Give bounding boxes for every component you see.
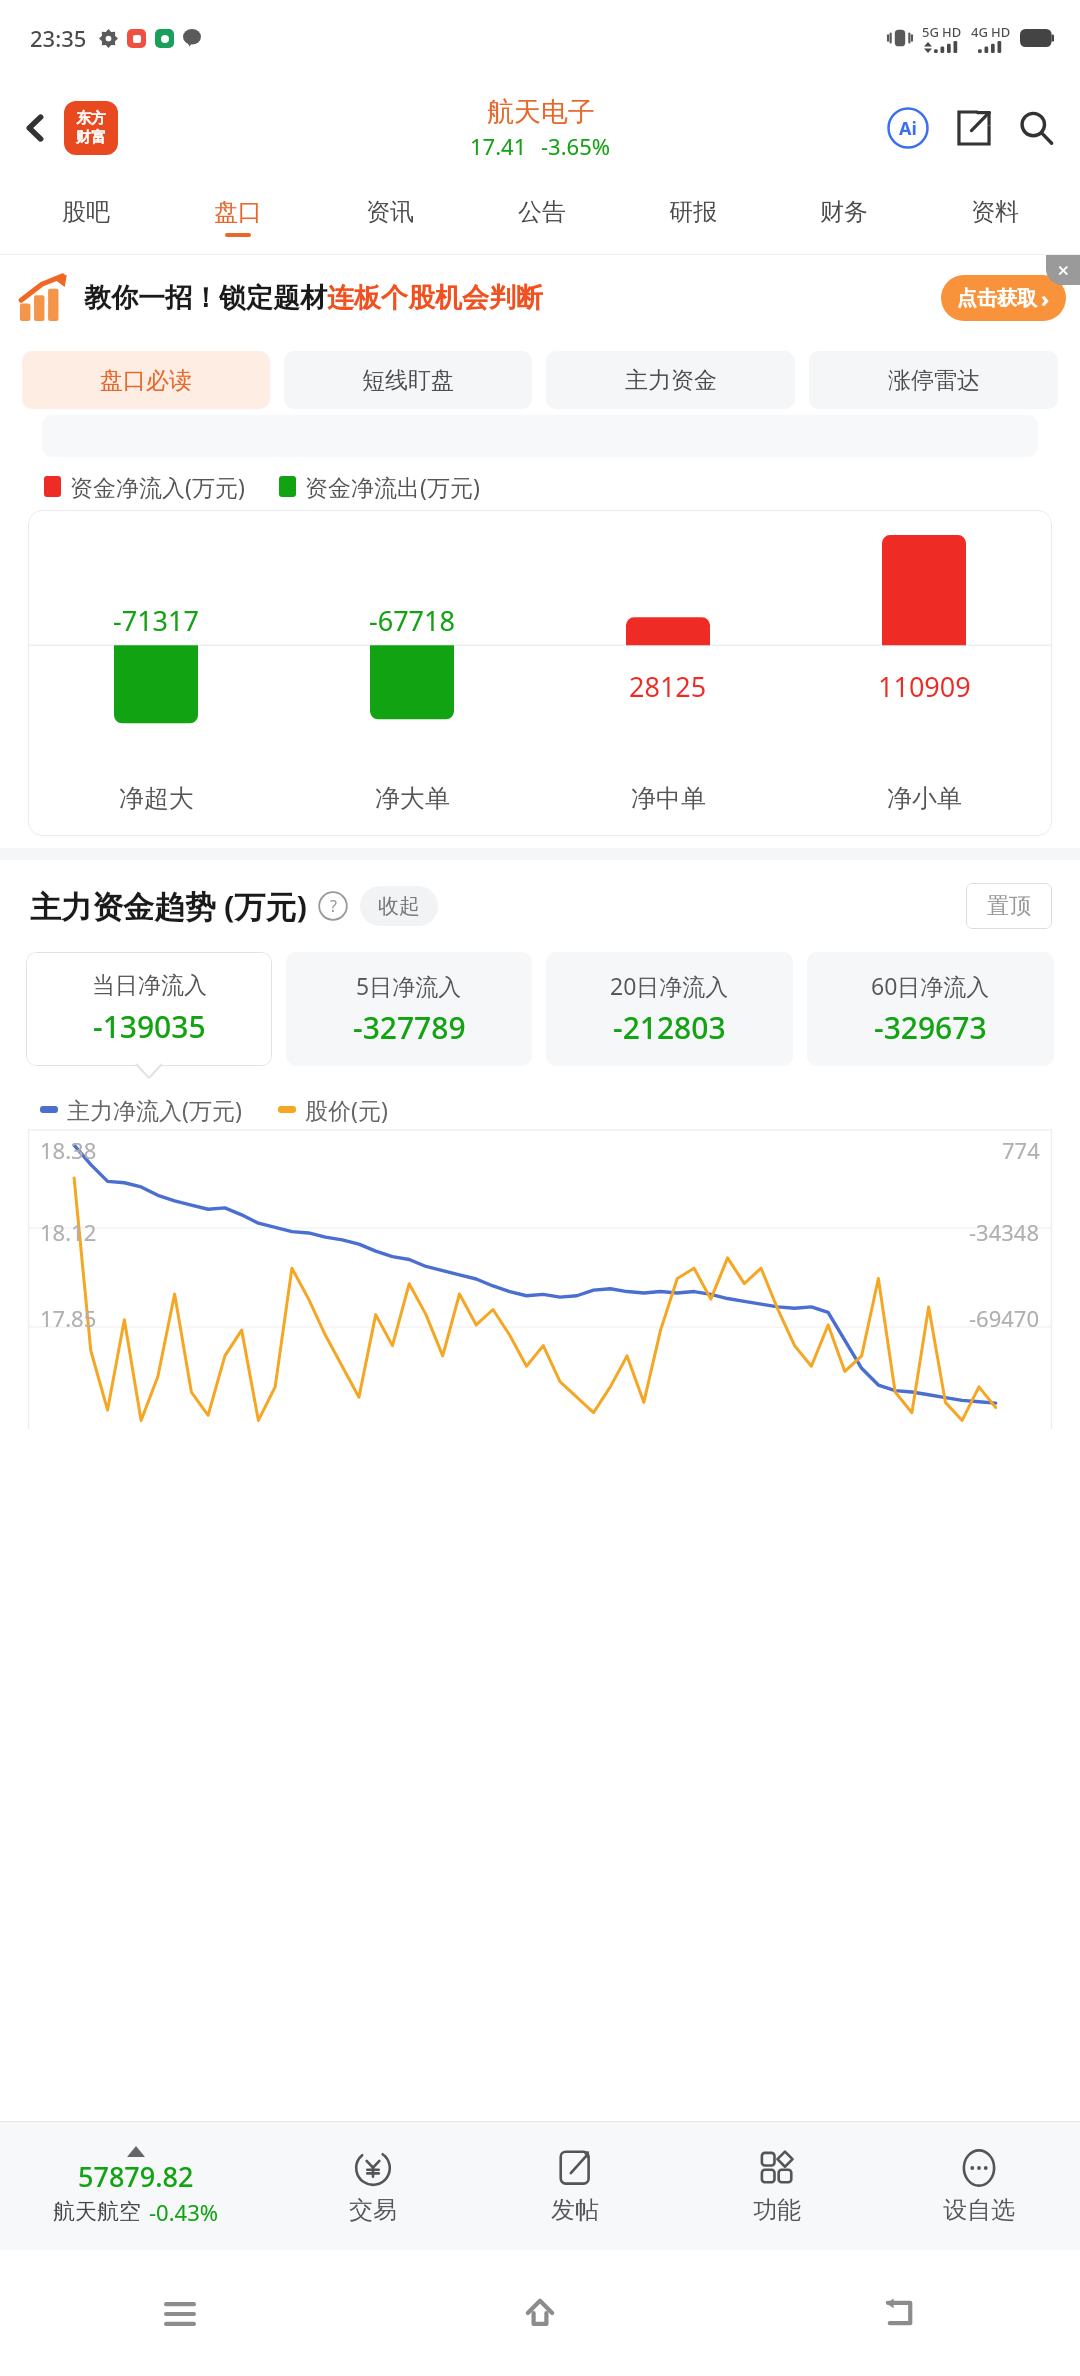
staticText: 资料 — [971, 197, 1019, 227]
staticText: 公告 — [518, 197, 566, 227]
staticText: 774 — [1002, 1135, 1040, 1165]
button[interactable]: 资讯 — [314, 180, 466, 254]
button[interactable]: 公告 — [466, 180, 617, 254]
staticText: -71317 — [113, 602, 199, 639]
button[interactable]: 收起 — [360, 886, 438, 926]
button[interactable]: 盘口必读 — [22, 351, 270, 409]
staticText: 60日净流入 — [871, 970, 990, 1001]
staticText: 主力资金 — [625, 366, 717, 395]
staticText: 研报 — [669, 197, 717, 227]
staticText: 股价(元) — [305, 1094, 388, 1125]
button[interactable]: 交易 — [272, 2122, 474, 2250]
staticText: 财务 — [820, 197, 868, 227]
button[interactable]: Home — [360, 2250, 720, 2376]
staticText: 资讯 — [366, 197, 414, 227]
button[interactable]: Share — [948, 102, 1000, 154]
staticText: 17.85 — [40, 1303, 97, 1333]
staticText: 57879.82 — [78, 2158, 194, 2195]
staticText: 净小单 — [887, 783, 962, 814]
button[interactable]: 当日净流入 — [26, 952, 272, 1066]
staticText: 主力资金趋势 (万元) — [30, 885, 308, 927]
staticText: Ai — [899, 116, 917, 141]
staticText: 股吧 — [62, 197, 110, 227]
button[interactable]: 设自选 — [878, 2122, 1080, 2250]
button[interactable]: 财务 — [768, 180, 919, 254]
button[interactable]: Help — [318, 891, 348, 921]
staticText: HD — [942, 23, 962, 41]
button[interactable]: Back — [8, 100, 64, 156]
staticText: 23:35 — [30, 23, 87, 53]
staticText: 教你一招！锁定题材 — [84, 281, 327, 315]
staticText: 涨停雷达 — [888, 366, 980, 395]
staticText: 东方 — [76, 109, 106, 128]
staticText: 置顶 — [987, 892, 1031, 920]
button[interactable]: 涨停雷达 — [809, 351, 1058, 409]
button[interactable]: 研报 — [617, 180, 768, 254]
staticText: 短线盯盘 — [362, 366, 454, 395]
staticText: 4G — [971, 23, 988, 41]
staticText: 当日净流入 — [92, 971, 207, 1000]
button[interactable]: 资料 — [919, 180, 1070, 254]
staticText: 5日净流入 — [356, 970, 462, 1001]
staticText: 净超大 — [119, 783, 194, 814]
staticText: -329673 — [874, 1007, 987, 1048]
button[interactable]: 57879.82 — [0, 2122, 272, 2250]
staticText: 17.41 — [470, 131, 527, 161]
staticText: 收起 — [378, 893, 420, 919]
button[interactable]: 置顶 — [966, 883, 1052, 929]
staticText: 航天航空 — [53, 2198, 141, 2226]
button[interactable]: 主力资金 — [546, 351, 795, 409]
button[interactable]: Close ad — [1046, 255, 1080, 285]
staticText: 航天电子 — [487, 95, 595, 129]
staticText: HD — [991, 23, 1011, 41]
button[interactable]: AI assistant — [882, 102, 934, 154]
button[interactable]: Recents — [0, 2250, 360, 2376]
staticText: 设自选 — [943, 2195, 1015, 2225]
staticText: ✕ — [1057, 262, 1070, 279]
button[interactable]: 盘口 — [162, 180, 314, 254]
button[interactable]: 发帖 — [474, 2122, 676, 2250]
staticText: 资金净流出(万元) — [305, 471, 480, 502]
staticText: 功能 — [753, 2195, 801, 2225]
button[interactable]: 教你一招！锁定题材 — [0, 255, 1080, 341]
button[interactable]: 5日净流入 — [286, 952, 532, 1066]
staticText: 5G — [922, 23, 939, 41]
staticText: 净中单 — [631, 783, 706, 814]
button[interactable]: Search — [1010, 102, 1062, 154]
staticText: -34348 — [969, 1217, 1040, 1247]
staticText: 盘口 — [214, 197, 262, 227]
staticText: 主力净流入(万元) — [67, 1094, 242, 1125]
staticText: -69470 — [969, 1303, 1040, 1333]
button[interactable]: 20日净流入 — [546, 952, 793, 1066]
staticText: 连板个股机会判断 — [327, 281, 543, 315]
staticText: 资金净流入(万元) — [70, 471, 245, 502]
staticText: ? — [330, 895, 337, 917]
button[interactable]: 点击获取 — [941, 275, 1066, 321]
staticText: 盘口必读 — [100, 366, 192, 395]
button[interactable]: 短线盯盘 — [284, 351, 532, 409]
button[interactable]: Back — [720, 2250, 1080, 2376]
staticText: 18.12 — [40, 1217, 97, 1247]
staticText: -3.65% — [541, 131, 611, 161]
staticText: 净大单 — [375, 783, 450, 814]
button[interactable]: 功能 — [676, 2122, 878, 2250]
staticText: 财富 — [76, 128, 106, 147]
staticText: -67718 — [369, 602, 455, 639]
staticText: 18.38 — [40, 1135, 97, 1165]
button[interactable]: East Money — [64, 101, 118, 155]
staticText: 110909 — [878, 668, 971, 705]
staticText: 28125 — [629, 668, 707, 705]
staticText: -139035 — [93, 1006, 206, 1047]
staticText: 点击获取 — [957, 286, 1037, 311]
staticText: -0.43% — [149, 2197, 219, 2227]
button[interactable]: 股吧 — [10, 180, 162, 254]
staticText: 20日净流入 — [610, 970, 729, 1001]
staticText: 发帖 — [551, 2195, 599, 2225]
button[interactable]: 60日净流入 — [807, 952, 1054, 1066]
staticText: › — [1041, 283, 1050, 313]
staticText: -327789 — [353, 1007, 466, 1048]
staticText: -212803 — [613, 1007, 726, 1048]
staticText: 交易 — [349, 2195, 397, 2225]
